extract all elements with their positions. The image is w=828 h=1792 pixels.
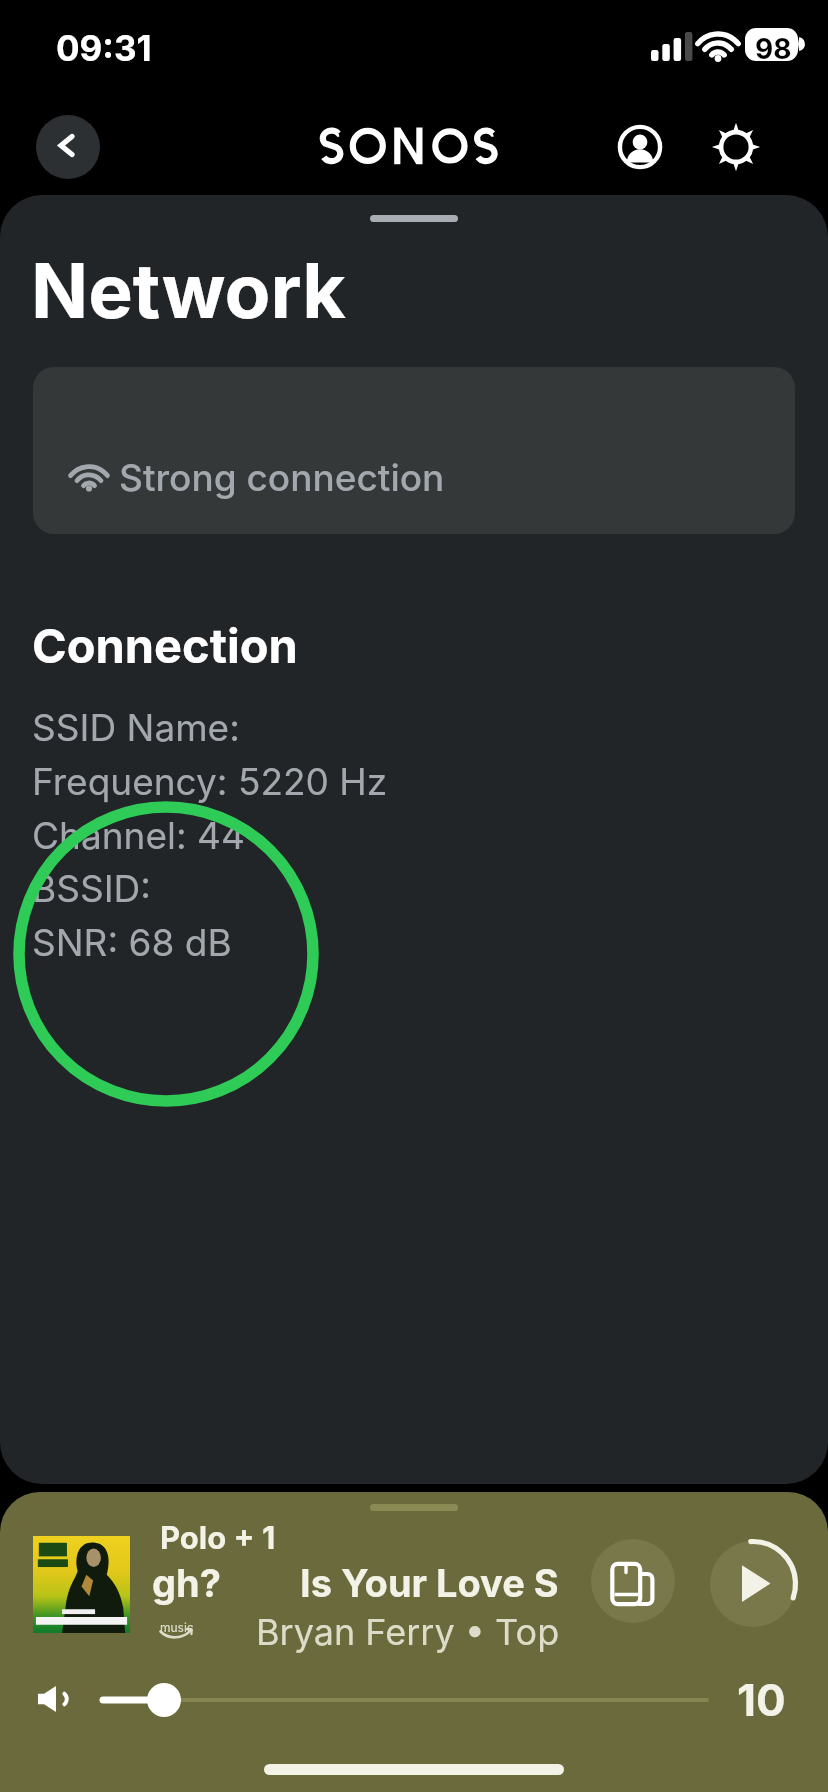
button[interactable]: Play (710, 1541, 796, 1627)
staticText: Frequency: 5220 Hz (32, 759, 388, 804)
button[interactable]: Volume (85, 1679, 725, 1721)
staticText: gh? (152, 1560, 221, 1606)
staticText: SSID Name: (32, 705, 240, 750)
staticText: 10 (737, 1673, 786, 1726)
staticText: Bryan Ferry • Top (256, 1610, 560, 1654)
staticText: 09:31 (56, 27, 152, 69)
staticText: Connection (32, 617, 298, 674)
staticText: SNR: 68 dB (32, 920, 232, 965)
other: Sonos (314, 120, 504, 172)
staticText: Strong connection (119, 455, 445, 500)
staticText: Channel: 44 (32, 813, 245, 858)
button[interactable]: Speaker group (591, 1539, 675, 1623)
staticText: Network (31, 245, 346, 336)
staticText: music (160, 1620, 194, 1635)
staticText: BSSID: (32, 866, 151, 911)
staticText: 98 (755, 32, 792, 66)
staticText: Polo + 1 (160, 1519, 276, 1557)
button[interactable]: Settings (704, 115, 768, 179)
button[interactable] (33, 367, 795, 534)
button[interactable]: Back (36, 115, 100, 179)
staticText: Is Your Love S (300, 1560, 559, 1606)
button[interactable]: Account (608, 115, 672, 179)
